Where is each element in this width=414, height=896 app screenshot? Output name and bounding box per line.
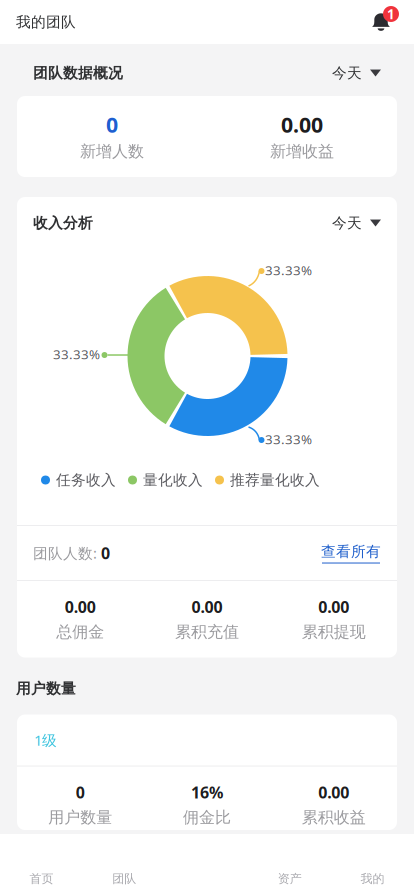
staticText: 今天 — [332, 64, 362, 82]
button[interactable]: 团队 — [83, 834, 166, 896]
staticText: 0 — [76, 782, 85, 803]
staticText: 33.33% — [53, 345, 100, 363]
button[interactable]: 通知 — [364, 7, 398, 37]
staticText: 团队数据概况 — [33, 64, 123, 82]
staticText: 16% — [191, 782, 223, 803]
staticText: 首页 — [29, 871, 53, 886]
staticText: 累积充值 — [175, 622, 239, 642]
staticText: 累积提现 — [302, 622, 366, 642]
staticText: 今天 — [332, 214, 362, 232]
button[interactable]: 首页 — [0, 834, 83, 896]
staticText: 1 — [387, 5, 395, 23]
staticText: 推荐量化收入 — [230, 471, 320, 489]
staticText: 查看所有 — [321, 542, 381, 560]
staticText: 总佣金 — [56, 622, 104, 642]
button[interactable]: 我的 — [331, 834, 414, 896]
staticText: 0.00 — [318, 782, 349, 803]
staticText: 用户数量 — [16, 679, 76, 697]
staticText: 我的团队 — [16, 13, 76, 31]
button[interactable]: 资产 — [248, 834, 331, 896]
button[interactable]: 查看所有 — [321, 542, 381, 563]
staticText: 团队 — [112, 871, 136, 886]
staticText: 0.00 — [65, 596, 96, 617]
staticText: 我的 — [361, 871, 385, 886]
staticText: 累积收益 — [302, 808, 366, 827]
button[interactable]: 1级 — [17, 714, 74, 765]
button[interactable]: 今天 — [332, 208, 381, 238]
staticText: 任务收入 — [56, 471, 116, 489]
staticText: 量化收入 — [143, 471, 203, 489]
staticText: 佣金比 — [183, 808, 231, 827]
staticText: 33.33% — [265, 430, 312, 448]
staticText: 0 — [101, 542, 110, 564]
staticText: 0 — [106, 110, 118, 139]
staticText: 1级 — [34, 730, 57, 750]
staticText: 33.33% — [265, 261, 312, 279]
staticText: 收入分析 — [33, 214, 93, 232]
staticText: 0.00 — [191, 596, 222, 617]
staticText: 用户数量 — [48, 808, 112, 827]
staticText: 0.00 — [281, 110, 323, 139]
staticText: 0.00 — [318, 596, 349, 617]
staticText: 新增收益 — [270, 142, 334, 161]
staticText: 团队人数: — [33, 543, 101, 563]
staticText: 新增人数 — [80, 142, 144, 161]
button[interactable]: 今天 — [332, 58, 381, 88]
staticText: 资产 — [278, 871, 302, 886]
